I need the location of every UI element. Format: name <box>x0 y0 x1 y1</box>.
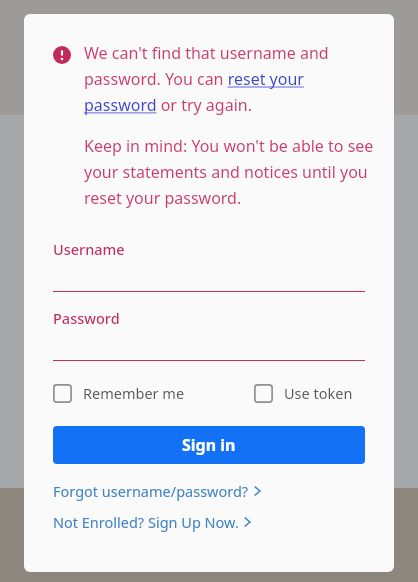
staticText: Keep in mind: You won't be able to see y… <box>84 135 378 209</box>
button[interactable]: Forgot username/password? <box>53 478 261 504</box>
staticText: Remember me <box>83 383 185 403</box>
button[interactable]: Not Enrolled? Sign Up Now. <box>53 509 251 535</box>
button[interactable]: Use token <box>254 381 353 405</box>
staticText: Username <box>53 239 125 259</box>
staticText: Forgot username/password? <box>53 481 249 501</box>
staticText: Password <box>53 308 120 328</box>
button[interactable]: Remember me <box>53 381 185 405</box>
staticText: Not Enrolled? Sign Up Now. <box>53 512 239 532</box>
staticText: We can't find that username and password… <box>84 42 378 116</box>
button[interactable]: Sign in <box>53 426 365 464</box>
staticText: Use token <box>284 383 353 403</box>
staticText: Sign in <box>182 434 236 456</box>
